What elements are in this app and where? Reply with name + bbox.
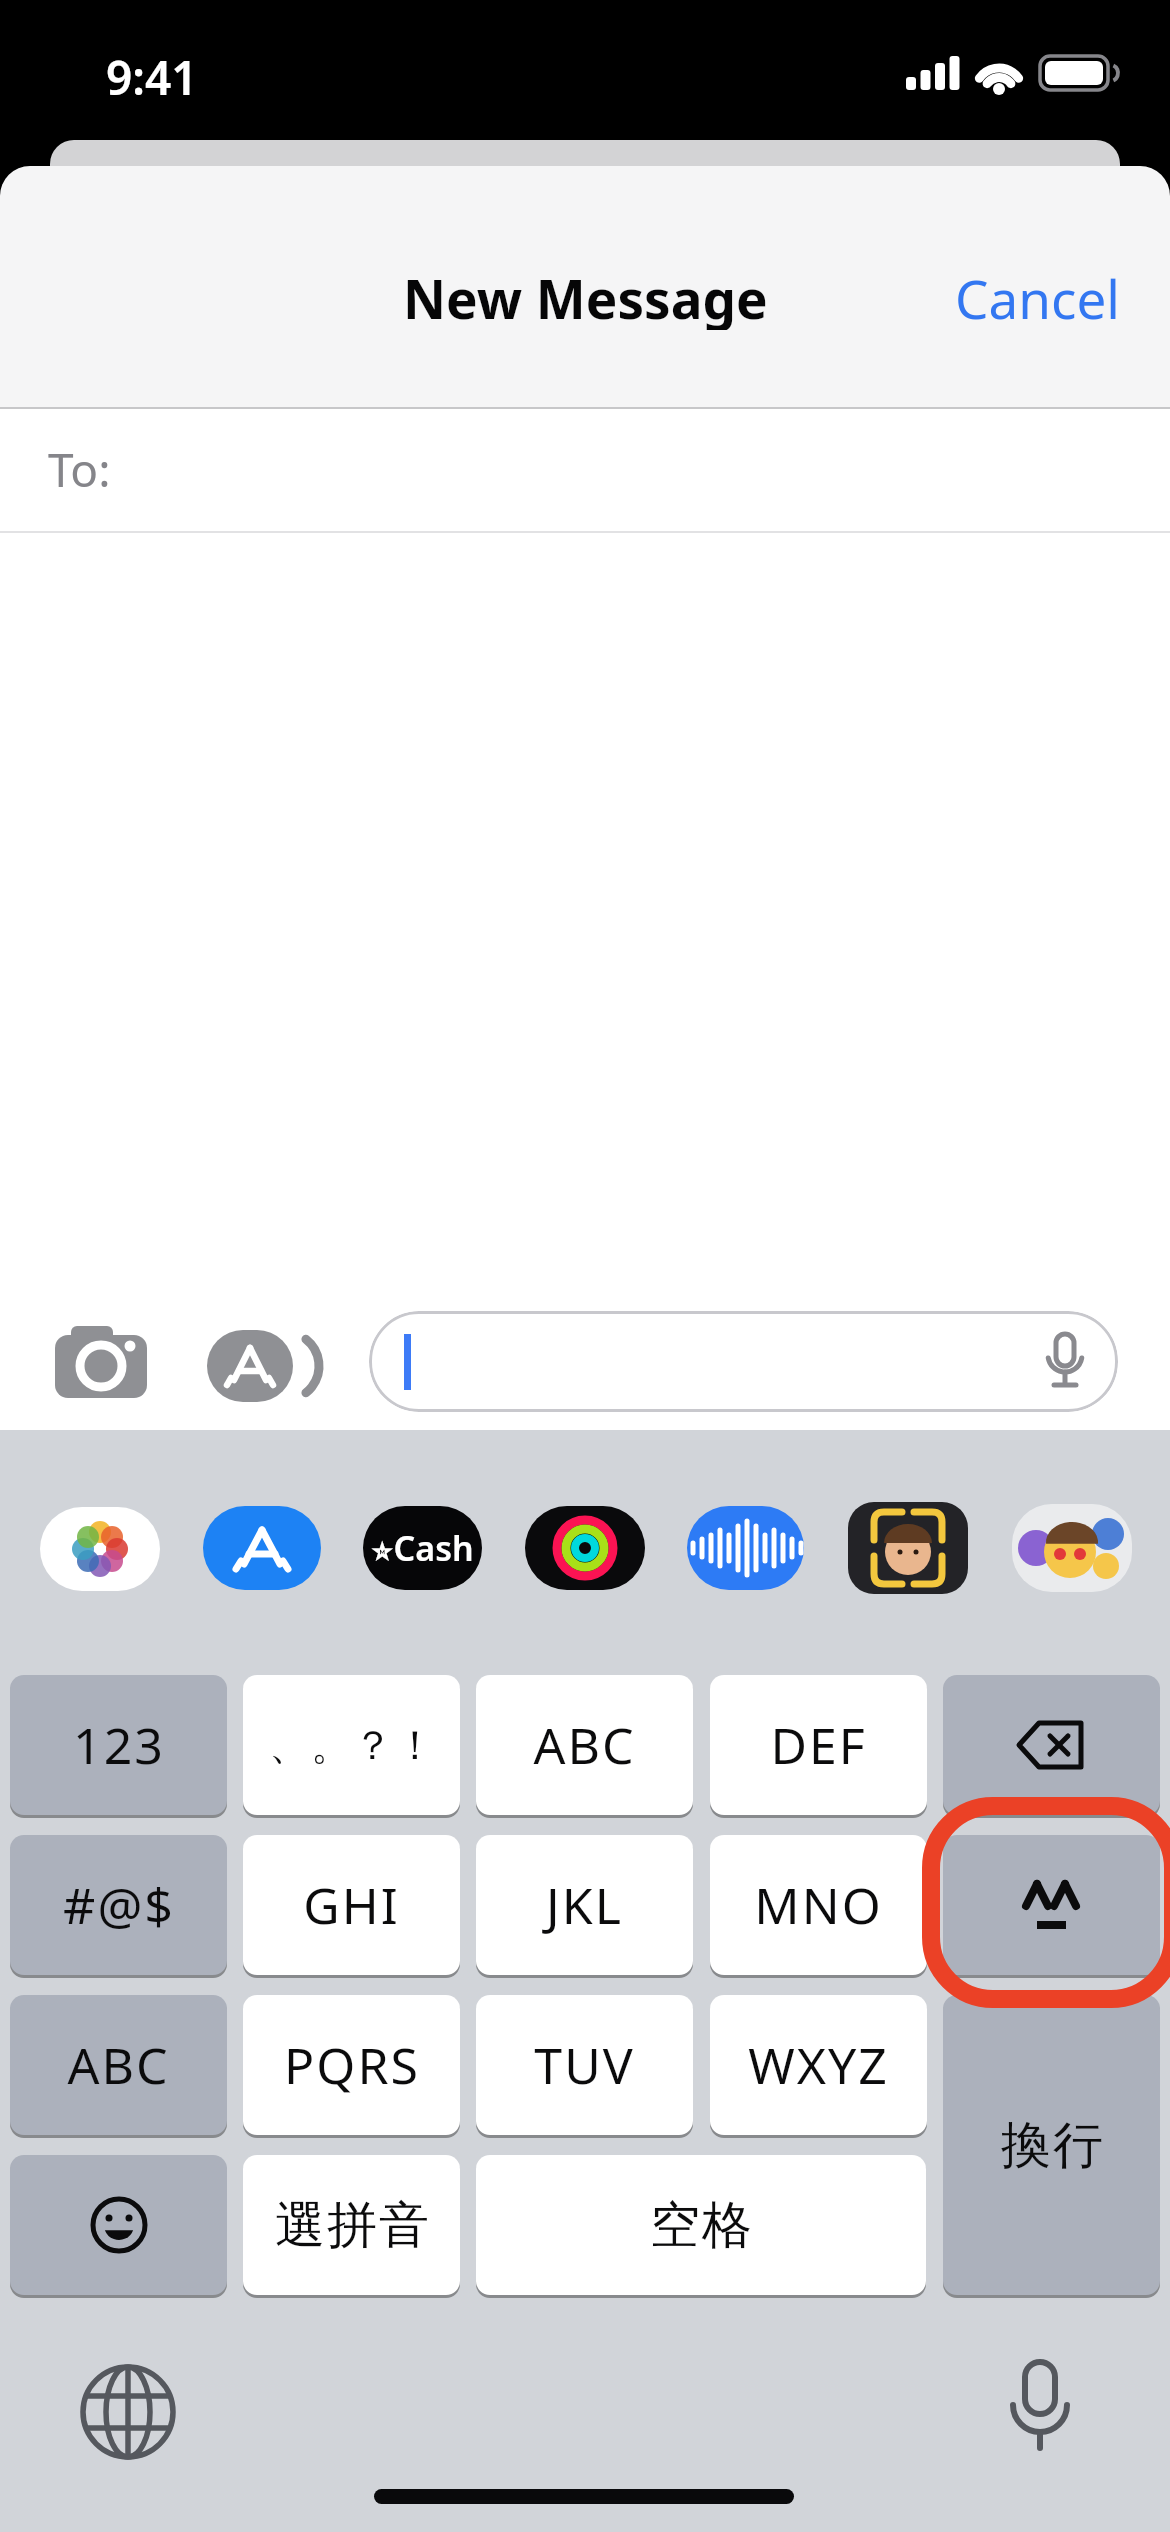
button[interactable]: PQRS xyxy=(243,1995,460,2135)
button[interactable]: WXYZ xyxy=(710,1995,927,2135)
button[interactable] xyxy=(10,2155,227,2295)
staticText: ABC xyxy=(533,1711,636,1779)
button[interactable]: GHI xyxy=(243,1835,460,1975)
staticText: Cash xyxy=(371,1525,474,1571)
button[interactable]: TUV xyxy=(476,1995,693,2135)
button[interactable]: Cancel xyxy=(955,262,1120,330)
button[interactable] xyxy=(848,1502,968,1594)
staticText: TUV xyxy=(534,2031,635,2099)
button[interactable] xyxy=(80,2364,176,2460)
staticText: 9:41 xyxy=(106,46,198,109)
staticText: MNO xyxy=(754,1871,883,1939)
button[interactable]: MNO xyxy=(710,1835,927,1975)
button[interactable]: 選拼音 xyxy=(243,2155,460,2295)
button[interactable]: 換行 xyxy=(943,1995,1160,2295)
staticText: 換行 xyxy=(1000,2114,1104,2177)
button[interactable] xyxy=(369,1311,1118,1412)
button[interactable] xyxy=(55,1326,147,1398)
staticText: To: xyxy=(48,438,111,501)
button[interactable] xyxy=(1012,1504,1132,1592)
staticText: ABC xyxy=(67,2031,170,2099)
button[interactable] xyxy=(943,1835,1160,1975)
staticText: DEF xyxy=(770,1711,867,1779)
staticText: 123 xyxy=(73,1711,165,1779)
button[interactable]: #@$ xyxy=(10,1835,227,1975)
button[interactable] xyxy=(40,1507,160,1591)
staticText: PQRS xyxy=(284,2031,420,2099)
button[interactable]: ABC xyxy=(476,1675,693,1815)
button[interactable] xyxy=(203,1506,321,1590)
staticText: WXYZ xyxy=(748,2031,889,2099)
button[interactable]: DEF xyxy=(710,1675,927,1815)
staticText: 選拼音 xyxy=(274,2194,430,2257)
button[interactable] xyxy=(1005,2360,1075,2460)
staticText: GHI xyxy=(303,1871,400,1939)
button[interactable]: 123 xyxy=(10,1675,227,1815)
button[interactable]: ABC xyxy=(10,1995,227,2135)
button[interactable]: JKL xyxy=(476,1835,693,1975)
staticText: 、。？！ xyxy=(268,1720,436,1770)
staticText: #@$ xyxy=(63,1871,175,1939)
staticText: New Message xyxy=(403,262,768,330)
button[interactable] xyxy=(687,1506,804,1590)
staticText: JKL xyxy=(546,1871,623,1939)
button[interactable]: Cash xyxy=(363,1506,482,1590)
button[interactable] xyxy=(207,1330,322,1402)
button[interactable]: 、。？！ xyxy=(243,1675,460,1815)
staticText: Cancel xyxy=(955,262,1120,330)
button[interactable] xyxy=(943,1675,1160,1815)
button[interactable] xyxy=(525,1506,645,1590)
button[interactable]: 空格 xyxy=(476,2155,926,2295)
staticText: 空格 xyxy=(649,2194,753,2257)
